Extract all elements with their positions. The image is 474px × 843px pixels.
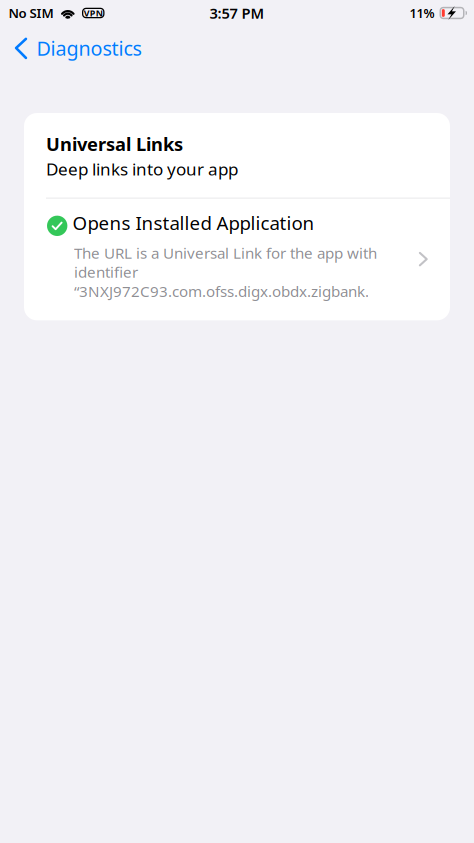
staticText: “3NXJ972C93.com.ofss.digx.obdx.zigbank. [74,281,369,301]
staticText: No SIM [9,4,54,22]
staticText: 3:57 PM [209,3,264,23]
staticText: VPN [84,7,103,19]
button[interactable]: Diagnostics [0,26,153,66]
staticText: identifier [74,262,138,282]
staticText: The URL is a Universal Link for the app … [74,242,377,263]
staticText: Opens Installed Application [72,210,314,235]
staticText: Universal Links [46,131,183,156]
staticText: 11% [409,4,434,22]
button[interactable]: Opens Installed Application [24,199,450,320]
staticText: Deep links into your app [46,157,238,181]
staticText: Diagnostics [36,35,141,61]
